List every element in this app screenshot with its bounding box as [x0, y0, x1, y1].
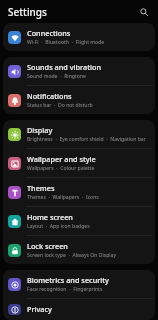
button[interactable]: Display — [3, 120, 155, 148]
button[interactable]: Home screen — [3, 207, 155, 235]
staticText: Display — [27, 125, 53, 135]
button[interactable]: Notifications — [3, 86, 155, 114]
button[interactable]: Connections — [3, 23, 155, 51]
button[interactable]: Lock screen — [3, 236, 155, 264]
staticText: Wallpaper and style — [27, 154, 96, 164]
button[interactable]: Biometrics and security — [3, 270, 155, 298]
staticText: Lock screen — [27, 241, 68, 251]
staticText: Wallpapers · Colour palette — [27, 165, 95, 172]
button[interactable]: Privacy — [3, 299, 155, 320]
staticText: Privacy — [27, 304, 52, 314]
staticText: Sounds and vibration — [27, 62, 102, 72]
staticText: Themes — [27, 183, 55, 193]
staticText: Sound mode · Ringtone — [27, 73, 86, 80]
staticText: Notifications — [27, 91, 72, 101]
staticText: Themes · Wallpapers · Icons — [27, 194, 99, 201]
staticText: Brightness · Eye comfort shield · Naviga… — [27, 136, 146, 143]
staticText: Settings — [8, 5, 47, 19]
staticText: Connections — [27, 28, 71, 38]
staticText: Biometrics and security — [27, 275, 109, 285]
staticText: Screen lock type · Always On Display — [27, 252, 117, 259]
button[interactable]: Sounds and vibration — [3, 57, 155, 85]
staticText: Layout · App icon badges — [27, 223, 90, 230]
button[interactable]: Wallpaper and style — [3, 149, 155, 177]
button[interactable]: Search — [137, 5, 151, 19]
staticText: Wi-Fi · Bluetooth · Flight mode — [27, 39, 105, 46]
staticText: Home screen — [27, 212, 73, 222]
button[interactable]: Themes — [3, 178, 155, 206]
staticText: Status bar · Do not disturb — [27, 102, 93, 109]
staticText: Face recognition · Fingerprints — [27, 286, 103, 293]
